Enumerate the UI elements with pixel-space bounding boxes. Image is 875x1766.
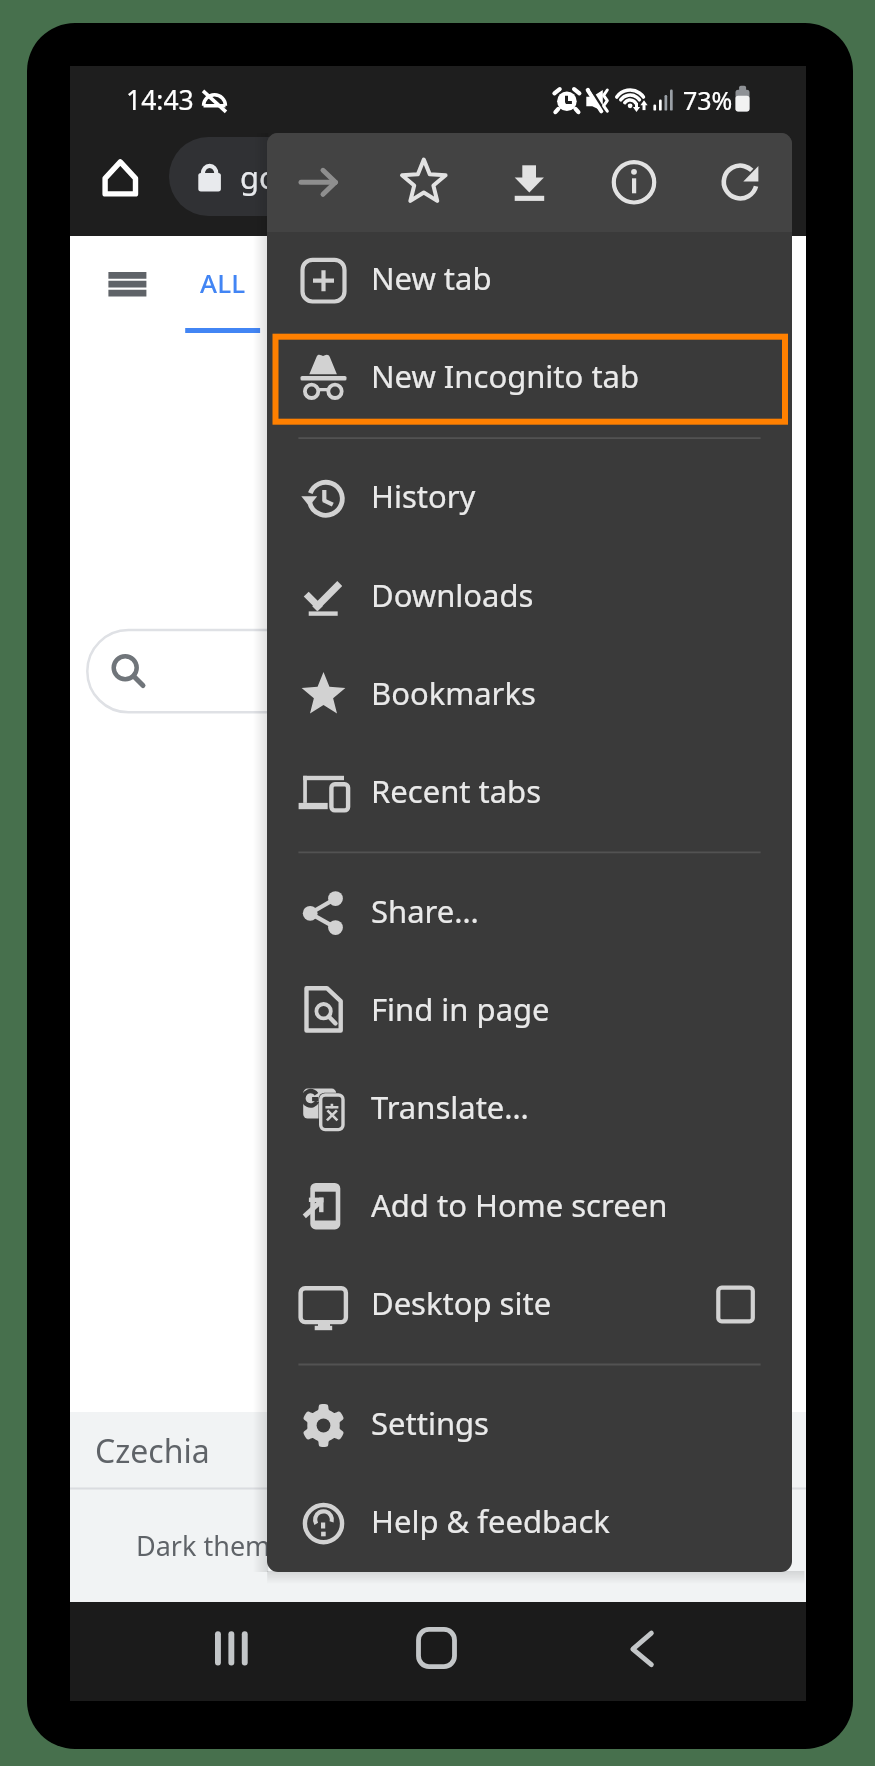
button[interactable]: Desktop site	[267, 1254, 792, 1351]
button[interactable]: Forward	[282, 147, 354, 219]
staticText: New Incognito tab	[371, 355, 640, 397]
staticText: Translate…	[371, 1086, 529, 1128]
staticText: Add to Home screen	[371, 1184, 668, 1226]
button[interactable]: Help & feedback	[267, 1472, 792, 1569]
button[interactable]: Page info	[598, 147, 670, 219]
button[interactable]: History	[267, 447, 792, 544]
button[interactable]: New Incognito tab	[267, 327, 792, 424]
staticText: Downloads	[371, 574, 534, 616]
button[interactable]: Reload	[705, 147, 777, 219]
staticText: Help & feedback	[371, 1500, 610, 1542]
staticText: History	[371, 475, 476, 517]
button[interactable]: Home page	[90, 147, 155, 212]
staticText: ALL	[200, 265, 246, 300]
button[interactable]: Home	[404, 1620, 466, 1682]
staticText: Recent tabs	[371, 770, 542, 812]
staticText: Czechia	[95, 1429, 210, 1473]
button[interactable]: Add to Home screen	[267, 1156, 792, 1253]
button[interactable]: Download page	[492, 147, 564, 219]
button[interactable]: Find in page	[267, 960, 792, 1057]
button[interactable]: Recent apps	[201, 1620, 263, 1682]
button[interactable]: Search	[87, 630, 547, 712]
staticText: go	[240, 156, 278, 198]
button[interactable]: Settings	[267, 1374, 792, 1471]
staticText: Find in page	[371, 988, 550, 1030]
button[interactable]: Bookmarks	[267, 644, 792, 741]
staticText: Settings	[371, 1402, 489, 1444]
button[interactable]: New tab	[267, 229, 792, 326]
button[interactable]: Bookmark	[388, 147, 460, 219]
button[interactable]: Back	[609, 1620, 671, 1682]
button[interactable]: Translate…	[267, 1058, 792, 1155]
staticText: Share…	[371, 890, 479, 932]
staticText: New tab	[371, 257, 492, 299]
staticText: Desktop site	[371, 1282, 552, 1324]
button[interactable]: Share…	[267, 862, 792, 959]
button[interactable]: Downloads	[267, 546, 792, 643]
staticText: 14:43	[126, 82, 194, 118]
staticText: Dark theme	[136, 1527, 286, 1564]
staticText: 73%	[683, 83, 733, 117]
button[interactable]: Search or type URL	[169, 137, 729, 216]
button[interactable]: Recent tabs	[267, 742, 792, 839]
staticText: Bookmarks	[371, 672, 536, 714]
